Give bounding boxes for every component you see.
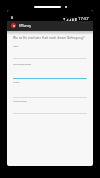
staticText: Straße <box>13 81 20 84</box>
button[interactable] <box>13 42 87 59</box>
staticText: Wo ist Ihr nächster Halt nach dieser Bef… <box>13 36 85 40</box>
button[interactable] <box>13 78 87 98</box>
staticText: BPSurvey <box>19 24 31 28</box>
button[interactable] <box>13 97 87 113</box>
button[interactable] <box>13 60 87 79</box>
staticText: Stadt <box>13 45 19 48</box>
staticText: Hausnummer <box>13 100 28 103</box>
staticText: Sehenswürdigkeit <box>13 63 32 66</box>
staticText: 17:57 <box>78 16 89 22</box>
